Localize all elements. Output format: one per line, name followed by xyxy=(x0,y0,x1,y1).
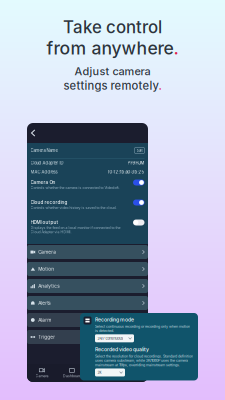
staticText: Displays the feed on a local monitor if … xyxy=(30,226,120,234)
staticText: Alerts xyxy=(38,300,50,306)
staticText: PF9HJM xyxy=(127,160,144,165)
button[interactable]: Trigger xyxy=(27,330,148,344)
staticText: 2k xyxy=(97,370,101,375)
button[interactable]: Alerts xyxy=(27,296,148,310)
button[interactable]: 24/7 continuous xyxy=(95,334,134,342)
staticText: Controls whether video history is saved … xyxy=(30,206,116,210)
staticText: Analytics xyxy=(38,283,59,289)
staticText: Camera On xyxy=(30,179,55,185)
button[interactable]: Back xyxy=(27,126,39,140)
staticText: Alarm xyxy=(38,317,51,323)
staticText: Adjust camera xyxy=(74,65,150,78)
button[interactable]: Dashboard xyxy=(57,368,87,378)
staticText: 24/7 continuous xyxy=(97,336,123,340)
button[interactable]: Camera On xyxy=(27,176,148,196)
button[interactable]: Edit xyxy=(134,148,144,153)
staticText: . xyxy=(173,37,178,59)
button[interactable]: Cloud recording xyxy=(27,196,148,216)
staticText: Select continuous recording or recording… xyxy=(95,324,190,333)
button[interactable]: Analytics xyxy=(27,279,148,293)
button[interactable]: Motion xyxy=(27,262,148,276)
staticText: Camera Name xyxy=(30,148,57,153)
button[interactable]: HDMI output xyxy=(27,216,148,238)
staticText: MAC Address xyxy=(30,169,57,174)
staticText: Take control xyxy=(63,17,162,37)
staticText: Cloud Adapter ID xyxy=(30,160,63,165)
staticText: Recorded video quality xyxy=(95,346,149,353)
staticText: Motion xyxy=(38,266,54,272)
staticText: . xyxy=(158,79,161,92)
button[interactable]: 2k xyxy=(95,368,125,376)
staticText: settings remotely xyxy=(63,79,158,92)
staticText: Edit xyxy=(136,148,142,153)
staticText: Camera xyxy=(38,249,56,255)
staticText: Dashboard xyxy=(63,374,81,378)
staticText: 10:12:fb:a0:3b:25 xyxy=(107,169,144,174)
staticText: from anywhere xyxy=(46,37,173,59)
staticText: Cloud recording xyxy=(30,199,67,205)
staticText: Recording mode xyxy=(95,316,134,323)
staticText: Controls whether the camera is connected… xyxy=(30,186,119,190)
staticText: Camera xyxy=(35,374,48,378)
button[interactable]: Alarm xyxy=(27,313,148,327)
button[interactable]: Camera xyxy=(27,368,57,378)
button[interactable]: Camera xyxy=(27,245,148,259)
staticText: HDMI output xyxy=(30,219,58,225)
staticText: Select the resolution for cloud recordin… xyxy=(95,354,193,367)
staticText: Trigger xyxy=(38,334,55,340)
